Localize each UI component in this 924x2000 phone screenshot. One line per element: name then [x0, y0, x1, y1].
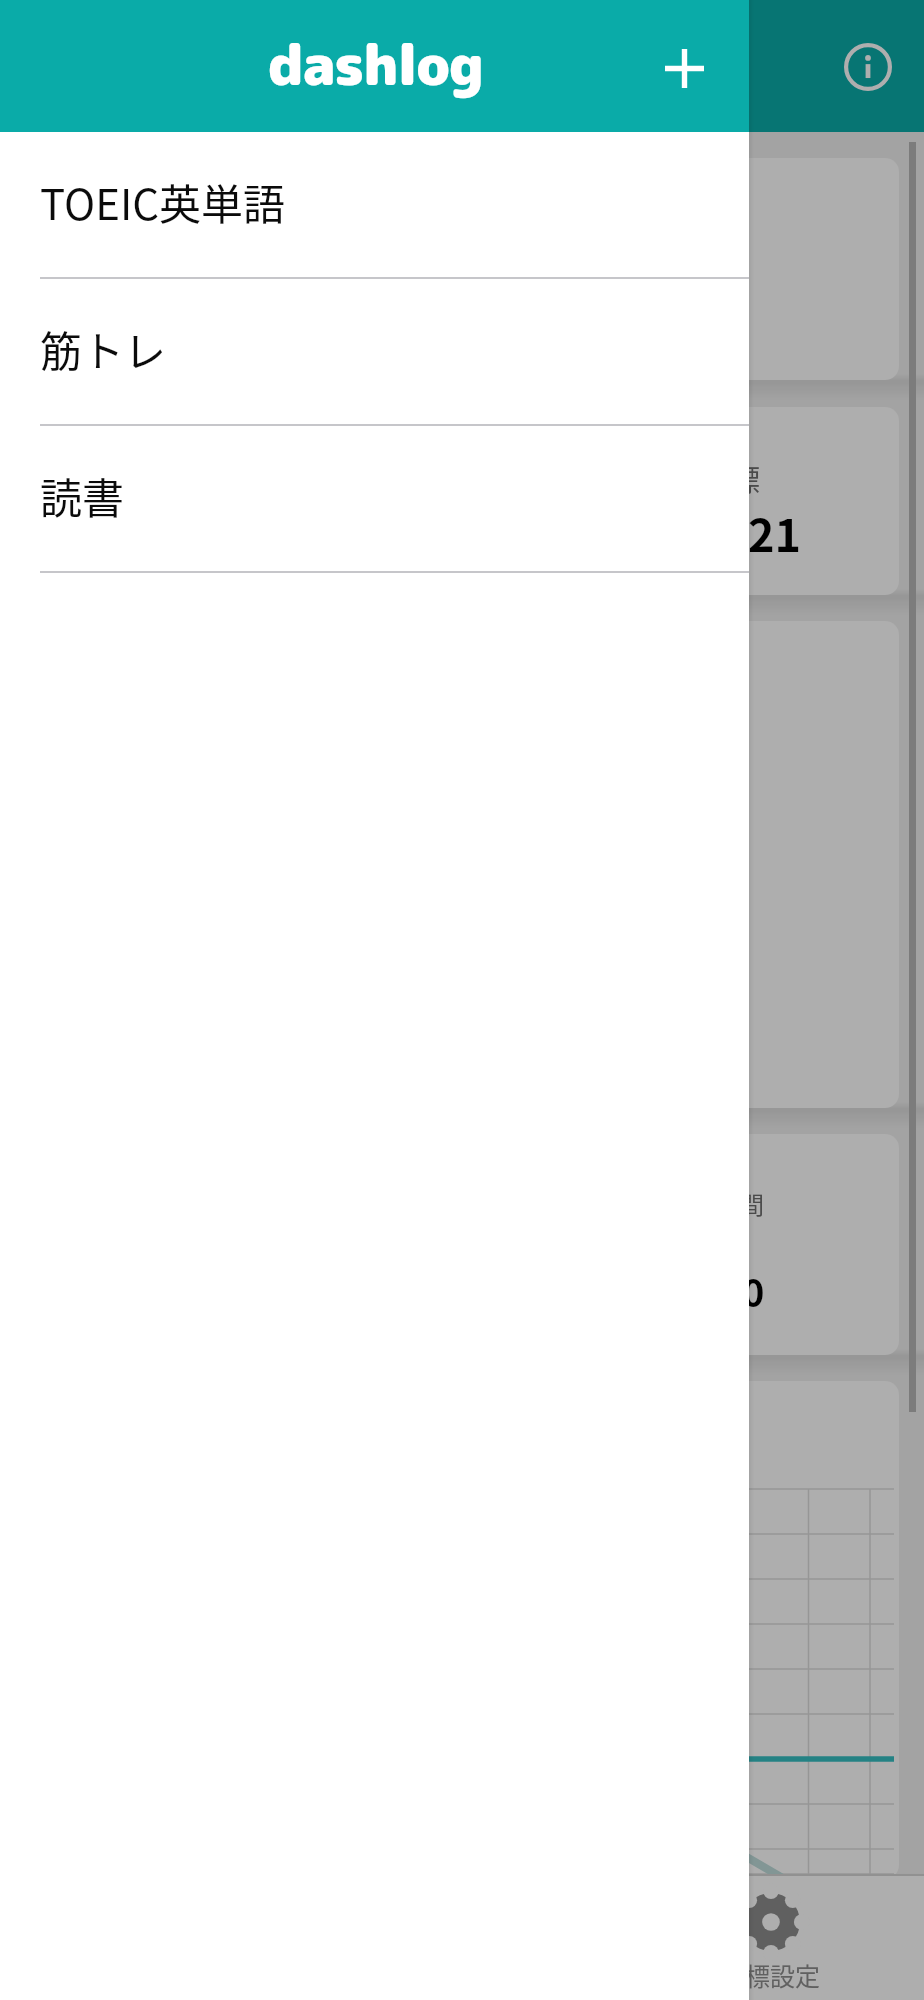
staticText: 読書 — [40, 465, 125, 526]
button[interactable]: 目標設定 — [616, 1874, 924, 2000]
button[interactable]: 筋トレ — [0, 279, 749, 426]
button[interactable]: 読書 — [0, 426, 749, 573]
button[interactable]: Info — [823, 22, 913, 112]
staticText: 目標 — [700, 456, 760, 499]
button[interactable]: TOEIC英単語 — [0, 132, 749, 279]
button[interactable] — [24, 1381, 899, 1879]
button[interactable]: 合計時間 — [24, 1134, 899, 1355]
staticText: 筋トレ — [40, 318, 167, 379]
button[interactable] — [24, 158, 899, 380]
button[interactable] — [24, 621, 899, 1108]
staticText: TOEIC英単語 — [40, 171, 286, 232]
button[interactable]: Add — [639, 23, 729, 113]
staticText: 0/21 — [704, 500, 802, 565]
staticText: 区間 — [716, 1186, 764, 1221]
staticText: 連続日数 — [87, 456, 207, 499]
button[interactable]: 連続日数 — [24, 407, 899, 595]
staticText: 目標設定 — [720, 1957, 821, 1993]
staticText: 0 — [742, 1263, 765, 1318]
staticText: dashlog — [268, 25, 483, 103]
